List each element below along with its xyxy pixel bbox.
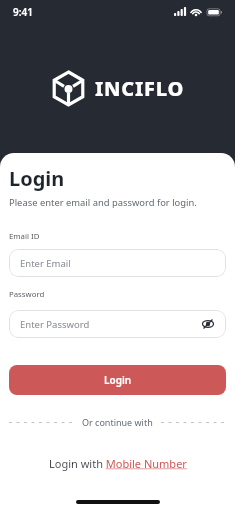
staticText: Enter Email [20, 257, 71, 270]
staticText: 9:41 [13, 5, 33, 19]
staticText: Email ID [9, 231, 40, 242]
staticText: Login [9, 165, 65, 192]
button[interactable]: Enter Email [9, 249, 226, 277]
staticText: Or continue with [82, 416, 153, 428]
staticText: Login [104, 373, 132, 387]
staticText: Password [9, 289, 45, 300]
button[interactable]: Login [9, 365, 226, 395]
button[interactable]: Enter Password [9, 310, 226, 338]
staticText: Please enter email and password for logi… [9, 196, 197, 209]
staticText: INCIFLO [95, 75, 185, 102]
staticText: Enter Password [20, 318, 90, 331]
button[interactable]: Login with Mobile Number [9, 456, 226, 471]
staticText: Login with Mobile Number [49, 456, 187, 471]
